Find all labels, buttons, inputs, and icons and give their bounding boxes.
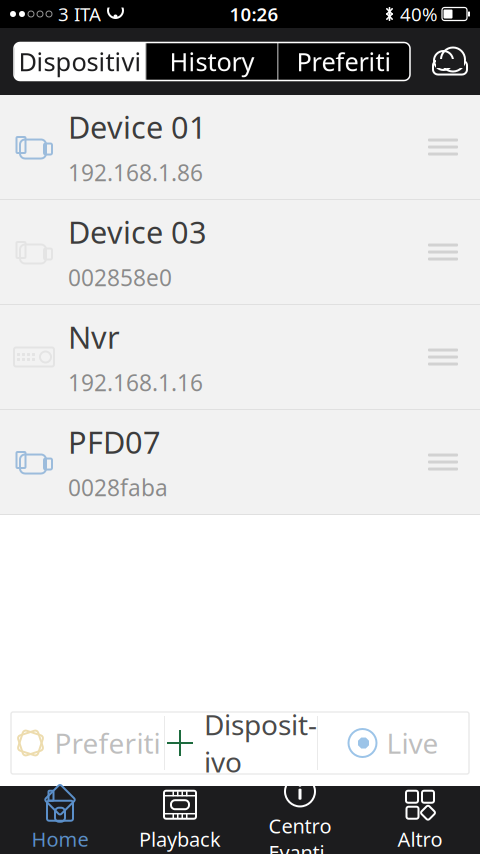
staticText: Device 03	[68, 212, 207, 252]
button[interactable]: Cloud	[424, 39, 476, 83]
button[interactable]: Dispositivi	[14, 42, 145, 80]
staticText: 192.168.1.86	[68, 157, 203, 187]
button[interactable]: Preferiti	[278, 42, 409, 80]
button[interactable]: Centro Evanti	[240, 786, 360, 854]
staticText: Live	[386, 724, 438, 762]
staticText: 10:26	[229, 2, 278, 26]
staticText: History	[169, 45, 254, 78]
staticText: PFD07	[68, 422, 161, 462]
staticText: 002858e0	[68, 262, 172, 292]
button[interactable]: Playback	[120, 786, 240, 854]
staticText: 0028faba	[68, 472, 168, 502]
button[interactable]: Live	[318, 712, 468, 774]
button[interactable]: PFD07	[0, 410, 480, 515]
button[interactable]: History	[146, 42, 277, 80]
staticText: Nvr	[68, 317, 120, 357]
staticText: Centro Evanti	[268, 812, 331, 854]
button[interactable]: Altro	[360, 786, 480, 854]
staticText: Preferiti	[296, 45, 391, 78]
staticText: Preferiti	[54, 724, 160, 762]
button[interactable]: Device 03	[0, 200, 480, 305]
button[interactable]: Device 01	[0, 95, 480, 200]
staticText: Playback	[139, 826, 221, 852]
staticText: Dispositivi	[18, 45, 141, 78]
button[interactable]: Preferiti	[12, 712, 164, 774]
staticText: Device 01	[68, 107, 207, 147]
staticText: Dispositivo	[204, 706, 317, 780]
button[interactable]: Nvr	[0, 305, 480, 410]
staticText: 3 ITA	[58, 2, 101, 26]
staticText: 192.168.1.16	[68, 367, 203, 397]
button[interactable]: Home	[0, 786, 120, 854]
staticText: 40%	[400, 2, 438, 26]
staticText: Home	[31, 826, 88, 852]
button[interactable]: Dispositivo	[165, 712, 317, 774]
staticText: Altro	[397, 826, 442, 852]
